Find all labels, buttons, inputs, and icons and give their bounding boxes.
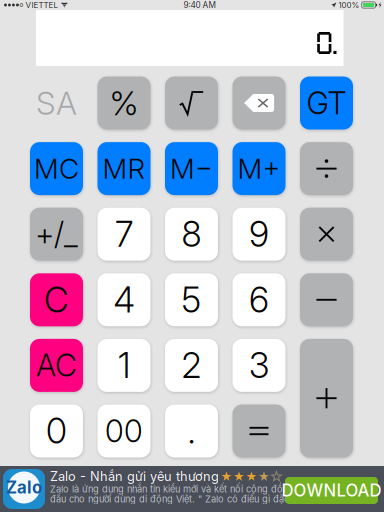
- button[interactable]: 9: [232, 208, 285, 261]
- button[interactable]: %: [97, 76, 150, 129]
- staticText: 1: [118, 344, 130, 386]
- button[interactable]: 8: [165, 208, 218, 261]
- button[interactable]: MC: [30, 142, 83, 195]
- staticText: Zalo - Nhắn gửi yêu thương: [50, 468, 219, 484]
- staticText: đầu cho người dùng di động Việt. " Zalo …: [50, 493, 298, 505]
- staticText: 3: [249, 344, 269, 386]
- button[interactable]: M+: [232, 142, 285, 195]
- staticText: Zalo là ứng dụng nhắn tin kiểu mới và kế…: [50, 483, 318, 495]
- staticText: Zalo: [6, 477, 42, 498]
- button[interactable]: Multiply: [300, 208, 353, 261]
- button[interactable]: 5: [165, 273, 218, 326]
- staticText: VIETTEL: [25, 0, 58, 10]
- button[interactable]: 1: [97, 339, 150, 392]
- button[interactable]: AC: [30, 339, 83, 392]
- button[interactable]: MR: [97, 142, 150, 195]
- button[interactable]: 2: [165, 339, 218, 392]
- staticText: 5: [181, 279, 201, 321]
- button[interactable]: 3: [232, 339, 285, 392]
- button[interactable]: GT: [300, 76, 353, 129]
- staticText: 4: [113, 279, 134, 321]
- staticText: DOWNLOAD: [281, 480, 381, 501]
- button[interactable]: C: [30, 273, 83, 326]
- staticText: 8: [181, 213, 201, 255]
- staticText: SA: [36, 84, 77, 122]
- staticText: .: [187, 410, 195, 452]
- staticText: 100%: [339, 0, 360, 10]
- staticText: MR: [102, 152, 145, 186]
- staticText: 00: [105, 412, 143, 449]
- staticText: %: [109, 83, 138, 123]
- staticText: AC: [36, 347, 77, 384]
- staticText: 9:40 AM: [184, 0, 216, 10]
- button[interactable]: Equals: [232, 404, 285, 457]
- button[interactable]: 00: [97, 404, 150, 457]
- button[interactable]: Minus: [300, 273, 353, 326]
- staticText: 9: [249, 213, 269, 255]
- button[interactable]: Plus: [300, 339, 353, 457]
- button[interactable]: Divide: [300, 142, 353, 195]
- staticText: M+: [237, 152, 280, 186]
- staticText: 7: [115, 213, 133, 255]
- button[interactable]: 6: [232, 273, 285, 326]
- button[interactable]: .: [165, 404, 218, 457]
- button[interactable]: Square root: [165, 76, 218, 129]
- button[interactable]: 4: [97, 273, 150, 326]
- button[interactable]: +/_: [30, 208, 83, 261]
- staticText: 6: [249, 279, 269, 321]
- staticText: 0: [46, 410, 67, 452]
- button[interactable]: M−: [165, 142, 218, 195]
- staticText: MC: [34, 152, 79, 186]
- button[interactable]: Zalo: [0, 466, 384, 512]
- staticText: C: [44, 279, 69, 321]
- staticText: 2: [181, 344, 201, 386]
- staticText: +/_: [35, 216, 78, 253]
- staticText: M−: [170, 152, 213, 186]
- button[interactable]: Delete: [232, 76, 285, 129]
- button[interactable]: 7: [97, 208, 150, 261]
- staticText: GT: [306, 84, 346, 121]
- button[interactable]: 0: [30, 404, 83, 457]
